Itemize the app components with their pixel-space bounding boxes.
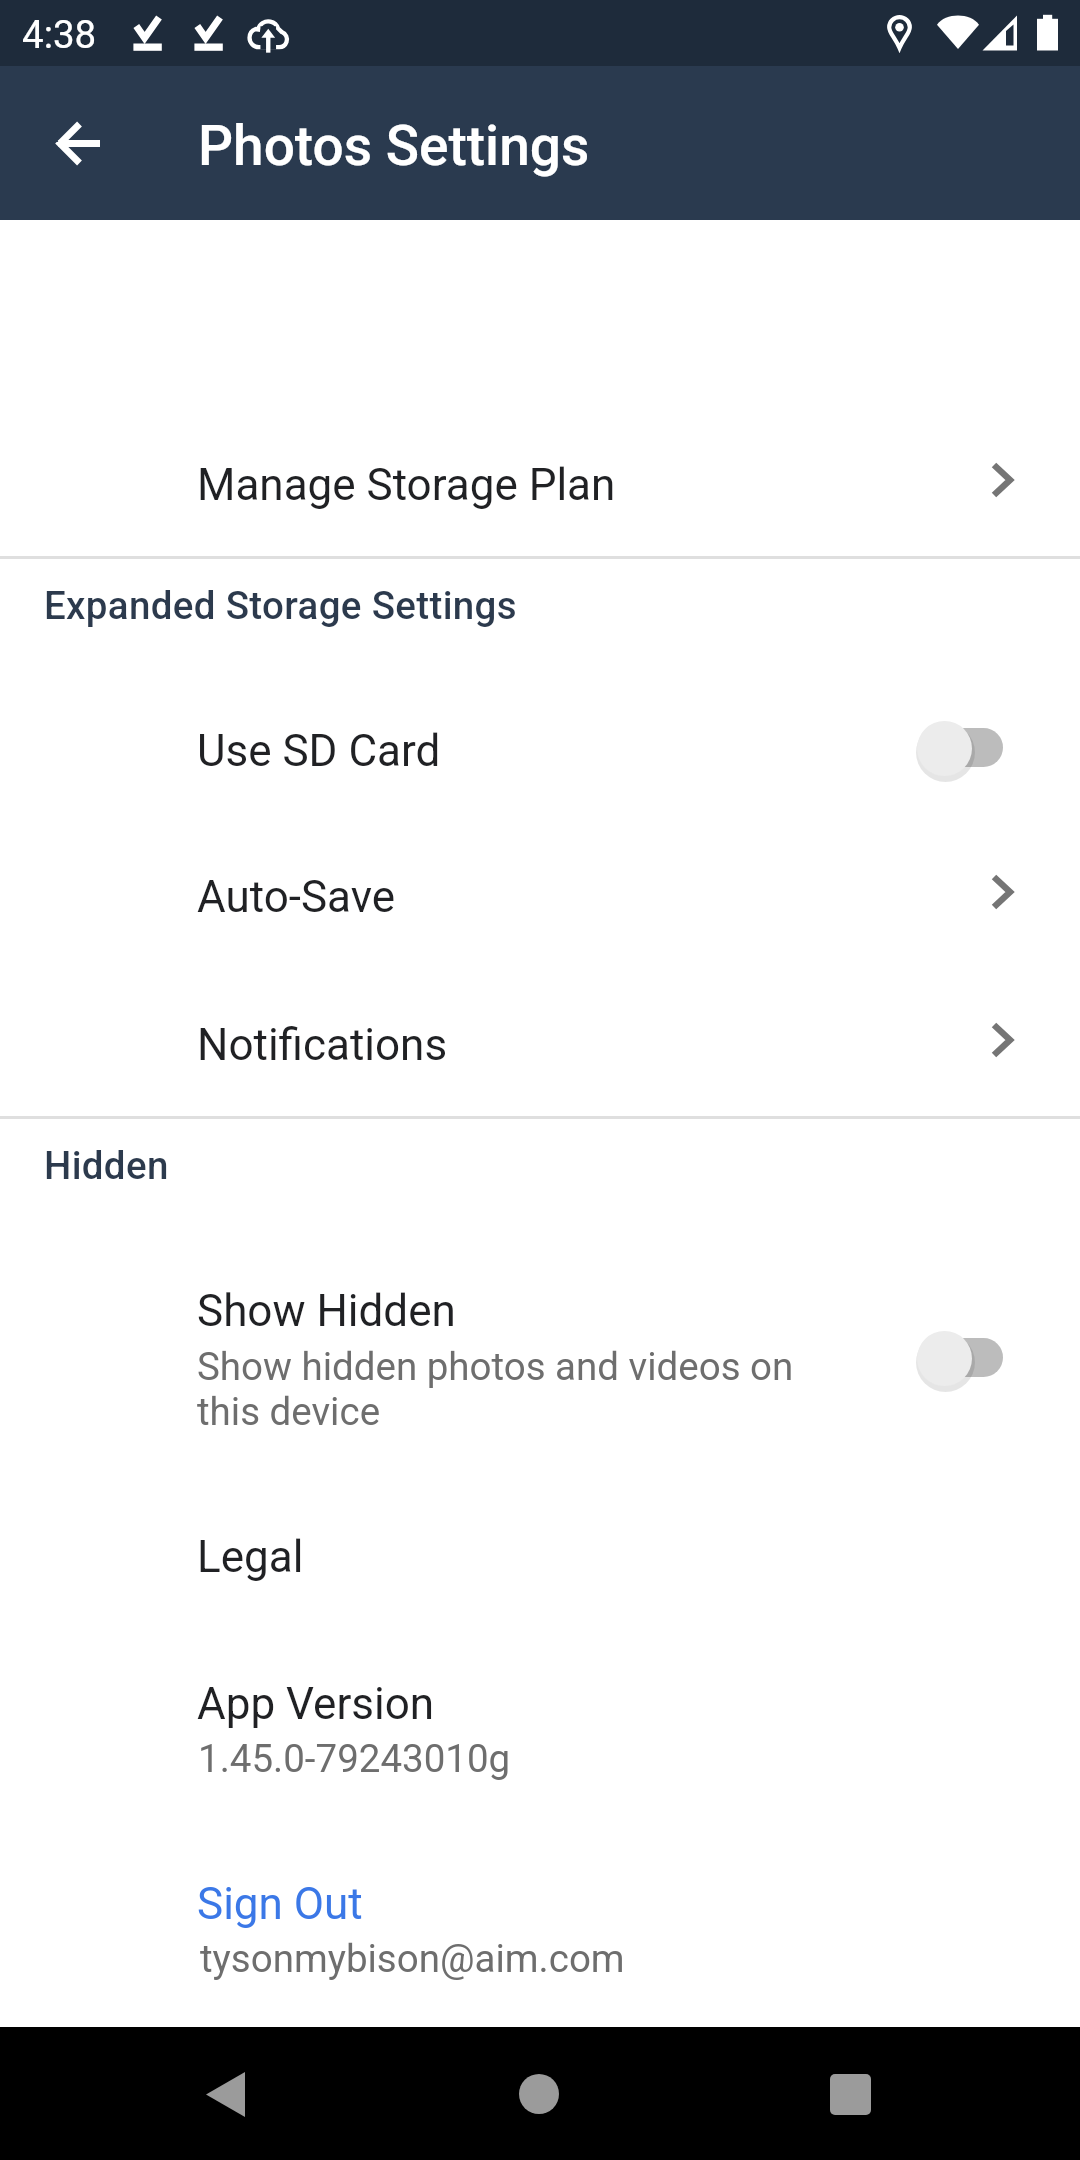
button[interactable]: Navigate up — [34, 100, 122, 188]
button[interactable] — [0, 847, 1080, 994]
button[interactable] — [0, 425, 1080, 556]
button[interactable]: Toggle — [888, 1308, 1033, 1408]
staticText: Show Hidden — [197, 1285, 1080, 1337]
staticText: Legal — [197, 1531, 1080, 1583]
staticText: Photos Settings — [198, 114, 1080, 178]
staticText: tysonmybison@aim.com — [200, 1936, 1080, 1981]
button[interactable]: Home — [474, 2029, 604, 2159]
button[interactable] — [0, 1255, 1080, 1455]
button[interactable]: Toggle — [888, 698, 1033, 798]
button[interactable]: Recent apps — [785, 2029, 915, 2159]
button[interactable] — [0, 1650, 1080, 1800]
button[interactable] — [0, 700, 1080, 847]
button[interactable] — [0, 994, 1080, 1113]
staticText: Sign Out — [197, 1878, 1080, 1930]
button[interactable] — [0, 1850, 1080, 2000]
staticText: Notifications — [197, 1019, 1080, 1071]
staticText: 4:38 — [22, 12, 1080, 57]
staticText: Expanded Storage Settings — [44, 583, 1080, 628]
button[interactable]: Back — [160, 2029, 290, 2159]
staticText: Auto-Save — [197, 871, 1080, 923]
staticText: Show hidden photos and videos on this de… — [197, 1344, 822, 1434]
button[interactable] — [0, 1500, 1080, 1610]
staticText: Use SD Card — [197, 725, 1080, 777]
staticText: App Version — [197, 1678, 1080, 1730]
staticText: Manage Storage Plan — [197, 459, 1080, 511]
staticText: Hidden — [44, 1143, 1080, 1188]
staticText: 1.45.0-79243010g — [198, 1736, 1080, 1781]
